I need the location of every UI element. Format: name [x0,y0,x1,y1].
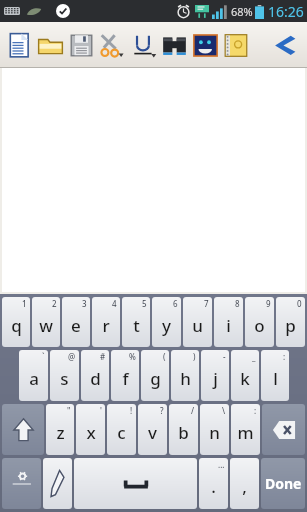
button[interactable]: Handwriting [43,458,72,509]
button[interactable]: % [111,350,139,401]
button[interactable]: 5 [122,297,150,347]
button[interactable]: ) [171,350,199,401]
staticText: / [191,405,195,416]
staticText: t [133,314,140,337]
button[interactable]: Cut [97,25,128,65]
button[interactable]: ? [138,404,167,455]
staticText: x [86,421,96,444]
button[interactable]: , [230,458,259,509]
button[interactable]: \ [200,404,229,455]
button[interactable]: ( [141,350,169,401]
staticText: p [285,314,296,337]
staticText: _ [252,351,256,362]
staticText: l [273,367,278,390]
staticText: ... [218,459,225,470]
staticText: ` [42,351,45,362]
staticText: ) [193,351,196,362]
button[interactable]: Notebook [221,25,252,65]
button[interactable]: 4 [92,297,120,347]
button[interactable]: " [46,404,74,455]
button[interactable]: 8 [214,297,243,347]
button[interactable]: 2 [32,297,60,347]
staticText: 9 [266,298,271,309]
staticText: r [102,314,110,337]
staticText: ? [160,405,164,416]
staticText: ! [130,405,133,416]
button[interactable]: @ [50,350,79,401]
staticText: 2 [52,298,57,309]
staticText: b [178,421,189,444]
button[interactable]: Emoticon [190,25,221,65]
staticText: k [240,367,250,390]
button[interactable]: 6 [152,297,181,347]
staticText: @ [68,351,76,362]
staticText: y [162,314,171,337]
button[interactable]: Save [66,25,97,65]
staticText: : [283,351,286,362]
button[interactable]: 9 [245,297,274,347]
button[interactable]: 0 [276,297,305,347]
staticText: 5 [142,298,147,309]
staticText: n [209,421,220,444]
staticText: 1 [22,298,27,309]
staticText: 4 [112,298,117,309]
staticText: w [39,314,53,337]
button[interactable]: 7 [183,297,212,347]
staticText: v [148,421,157,444]
button[interactable]: Underline [128,25,159,65]
button[interactable]: / [169,404,198,455]
staticText: m [237,421,254,444]
button[interactable]: Backspace [262,404,305,455]
staticText: 7 [204,298,209,309]
button[interactable]: Find [159,25,190,65]
staticText: : [254,405,257,416]
button[interactable]: : [261,350,289,401]
staticText: z [56,421,65,444]
button[interactable]: ! [107,404,136,455]
button[interactable]: # [81,350,109,401]
staticText: % [129,351,136,362]
staticText: - [223,351,226,362]
staticText: a [29,367,39,390]
staticText: ' [100,405,102,416]
staticText: " [67,405,71,416]
staticText: h [180,367,191,390]
staticText: 6 [173,298,178,309]
button[interactable]: ` [19,350,48,401]
button[interactable]: - [201,350,229,401]
staticText: d [90,367,101,390]
button[interactable]: : [231,404,260,455]
staticText: 0 [297,298,302,309]
staticText: u [192,314,203,337]
staticText: q [11,314,22,337]
staticText: g [150,367,161,390]
button[interactable]: Shift [2,404,44,455]
staticText: # [100,351,106,362]
staticText: ( [163,351,166,362]
button[interactable]: Symbols [2,458,41,509]
staticText: Done [265,474,302,493]
staticText: j [213,367,218,390]
staticText: c [117,421,126,444]
button[interactable]: Space [74,458,197,509]
button[interactable]: Open [35,25,66,65]
button[interactable]: ... [199,458,228,509]
button[interactable]: _ [231,350,259,401]
button[interactable]: ' [76,404,105,455]
staticText: , [242,475,247,498]
staticText: . [211,475,216,498]
staticText: e [71,314,81,337]
staticText: 68% [231,4,253,19]
button[interactable]: 3 [62,297,90,347]
button[interactable]: Back [267,27,303,63]
staticText: \ [222,405,226,416]
staticText: i [226,314,231,337]
staticText: 8 [235,298,240,309]
button[interactable]: Done [261,458,305,509]
staticText: 16:26 [268,2,304,21]
button[interactable]: New document [4,25,35,65]
staticText: f [122,367,129,390]
staticText: o [254,314,265,337]
button[interactable]: 1 [2,297,30,347]
staticText: 3 [82,298,87,309]
